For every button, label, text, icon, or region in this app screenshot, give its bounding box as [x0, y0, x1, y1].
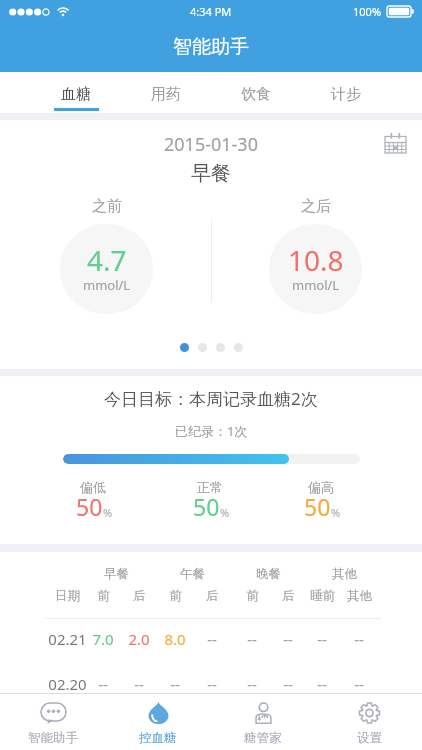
staticText: %: [103, 505, 113, 520]
staticText: --: [247, 674, 257, 693]
staticText: 已纪录：1次: [175, 422, 248, 440]
staticText: 10.8: [288, 241, 344, 279]
staticText: 计步: [331, 85, 361, 104]
staticText: --: [98, 674, 108, 693]
staticText: 之后: [301, 197, 331, 216]
button[interactable]: Calendar: [382, 130, 408, 156]
button[interactable]: 糖管家: [210, 693, 316, 750]
staticText: 早餐: [104, 566, 129, 582]
staticText: 偏低: [80, 479, 106, 495]
staticText: 8.0: [164, 629, 186, 649]
staticText: 设置: [357, 730, 382, 746]
staticText: 之前: [92, 197, 122, 216]
staticText: 其他: [347, 588, 372, 604]
staticText: 睡前: [310, 588, 335, 604]
staticText: --: [317, 629, 327, 649]
staticText: 50: [193, 491, 220, 522]
staticText: --: [207, 629, 217, 649]
staticText: 100%: [353, 4, 382, 19]
staticText: 50: [76, 491, 103, 522]
staticText: %: [331, 505, 341, 520]
button[interactable]: 用药: [121, 72, 211, 113]
staticText: 血糖: [61, 85, 91, 104]
button[interactable]: 计步: [301, 72, 391, 113]
staticText: 前: [97, 588, 110, 604]
staticText: 控血糖: [139, 730, 177, 746]
staticText: 糖管家: [244, 730, 282, 746]
staticText: 晚餐: [256, 566, 281, 582]
staticText: --: [134, 674, 144, 693]
staticText: 用药: [151, 85, 181, 104]
staticText: mmol/L: [292, 276, 340, 294]
staticText: 02.20: [48, 674, 87, 693]
staticText: 2015-01-30: [164, 132, 258, 157]
staticText: --: [354, 629, 364, 649]
staticText: 后: [282, 588, 295, 604]
staticText: 早餐: [191, 161, 231, 186]
staticText: 其他: [332, 566, 357, 582]
button[interactable]: 控血糖: [105, 693, 210, 750]
staticText: 后: [206, 588, 219, 604]
staticText: 偏高: [308, 479, 334, 495]
staticText: 02.21: [48, 629, 87, 649]
staticText: 午餐: [180, 566, 205, 582]
staticText: 智能助手: [173, 35, 249, 59]
staticText: mmol/L: [83, 276, 131, 294]
staticText: --: [283, 674, 293, 693]
button[interactable]: 饮食: [211, 72, 301, 113]
staticText: 7.0: [92, 629, 114, 649]
staticText: --: [247, 629, 257, 649]
button[interactable]: 血糖: [31, 72, 121, 113]
staticText: --: [207, 674, 217, 693]
staticText: --: [317, 674, 327, 693]
staticText: 今日目标：本周记录血糖2次: [104, 387, 318, 410]
staticText: 日期: [55, 588, 80, 604]
staticText: 前: [169, 588, 182, 604]
staticText: 前: [246, 588, 259, 604]
staticText: %: [220, 505, 230, 520]
button[interactable]: 智能助手: [0, 693, 105, 750]
button[interactable]: 设置: [316, 693, 422, 750]
staticText: 50: [304, 491, 331, 522]
staticText: 4:34 PM: [190, 4, 232, 19]
staticText: --: [170, 674, 180, 693]
staticText: 智能助手: [28, 730, 78, 746]
staticText: 4.7: [87, 241, 127, 279]
staticText: --: [283, 629, 293, 649]
staticText: --: [354, 674, 364, 693]
staticText: 2.0: [128, 629, 150, 649]
staticText: 正常: [197, 479, 223, 495]
staticText: 后: [133, 588, 146, 604]
staticText: 饮食: [241, 85, 271, 104]
